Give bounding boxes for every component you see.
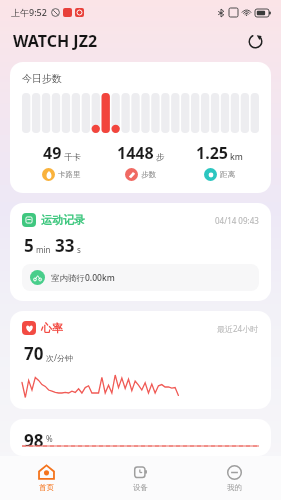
staticText: km [230, 151, 243, 163]
staticText: 步 [156, 152, 165, 163]
staticText: 首页 [39, 483, 54, 492]
staticText: 我的 [227, 483, 242, 492]
staticText: 上午9:52 [11, 6, 47, 18]
button[interactable]: 心率 [10, 311, 271, 409]
staticText: 最近24小时 [217, 323, 259, 334]
staticText: 1.25 [196, 142, 228, 164]
staticText: min [36, 244, 51, 255]
button[interactable]: 98 [10, 419, 271, 456]
staticText: % [46, 433, 53, 444]
button[interactable]: 1448 [101, 142, 180, 181]
button[interactable]: 首页 [0, 456, 93, 500]
staticText: 设备 [133, 483, 148, 492]
button[interactable]: 1.25 [180, 142, 259, 181]
staticText: WATCH JZ2 [13, 30, 98, 52]
button[interactable]: Sync [242, 28, 268, 54]
staticText: 33 [55, 234, 75, 257]
staticText: 千卡 [64, 152, 81, 163]
staticText: 98 [24, 429, 44, 446]
staticText: 1448 [117, 142, 154, 164]
staticText: 距离 [220, 170, 235, 179]
staticText: 心率 [41, 321, 63, 335]
staticText: 今日步数 [22, 72, 62, 85]
button[interactable]: 室内骑行0.00km [22, 264, 259, 291]
staticText: 室内骑行0.00km [51, 272, 115, 284]
button[interactable]: 今日步数 [10, 62, 271, 193]
button[interactable]: 我的 [187, 456, 281, 500]
staticText: 次/分钟 [46, 352, 73, 363]
staticText: 49 [43, 142, 62, 164]
staticText: s [77, 244, 81, 255]
staticText: 70 [24, 342, 44, 365]
staticText: 5 [24, 234, 34, 257]
button[interactable]: 49 [22, 142, 101, 181]
staticText: 运动记录 [41, 213, 85, 227]
button[interactable]: 运动记录 [10, 203, 271, 301]
button[interactable]: 设备 [93, 456, 187, 500]
staticText: 04/14 09:43 [215, 215, 259, 226]
staticText: 步数 [141, 170, 156, 179]
staticText: 卡路里 [58, 170, 81, 179]
